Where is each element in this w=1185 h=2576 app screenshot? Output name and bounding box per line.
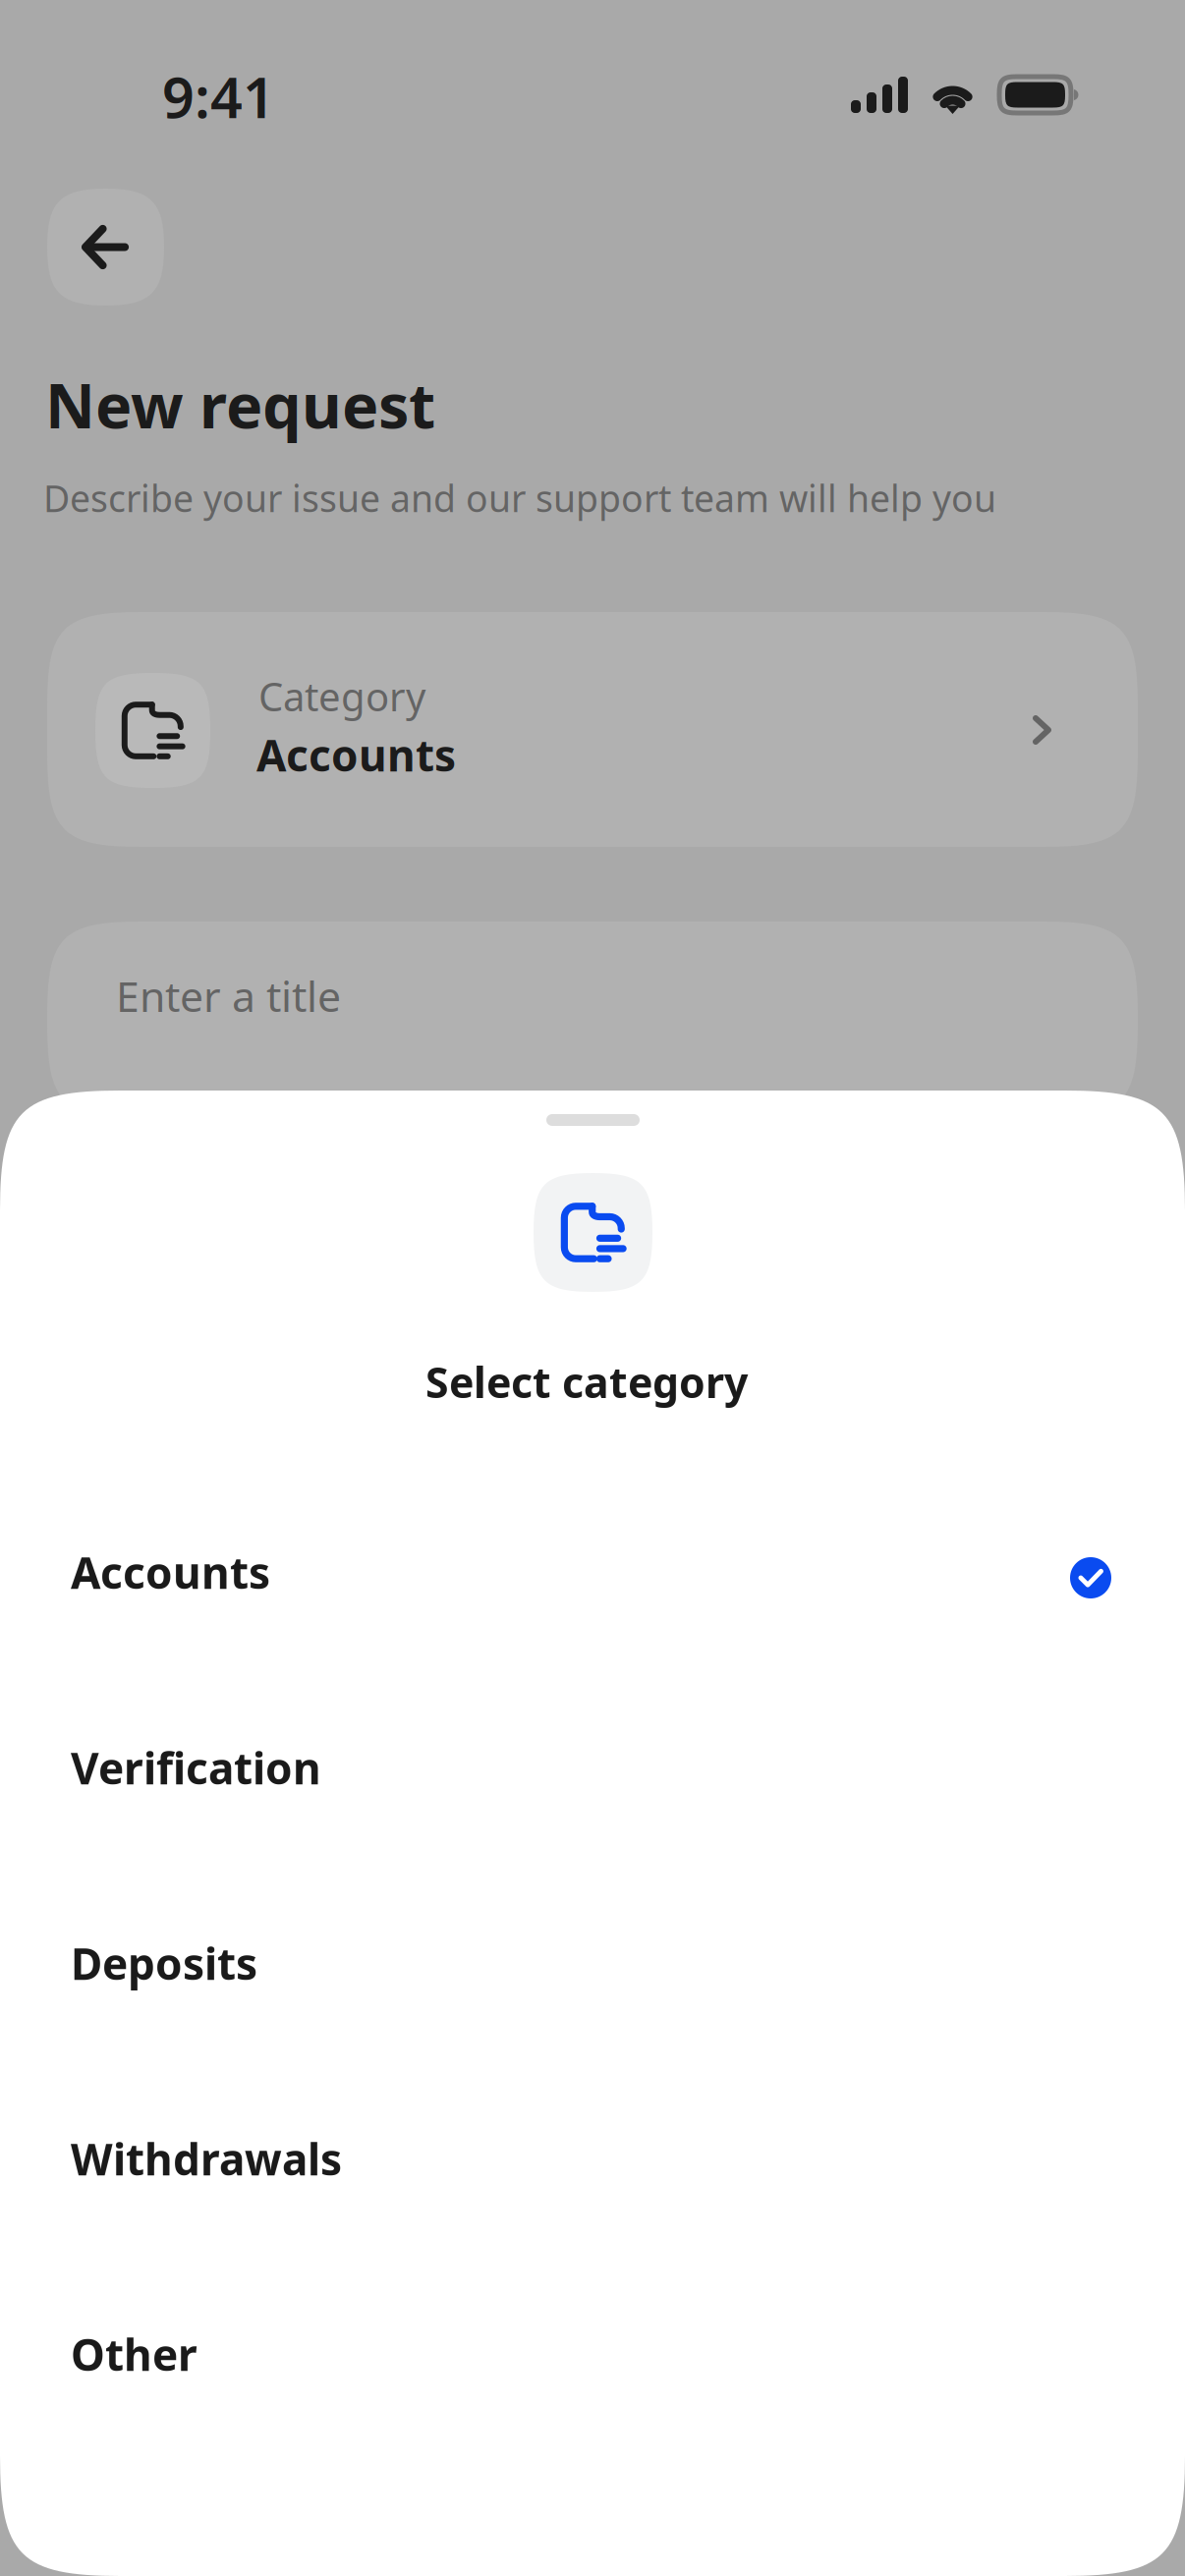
staticText: Select category (425, 1354, 748, 1410)
staticText: Category (258, 670, 425, 722)
staticText: Enter a title (116, 968, 341, 1023)
button[interactable]: Deposits (0, 1868, 1185, 2063)
staticText: Verification (71, 1739, 321, 1796)
button[interactable]: Verification (0, 1672, 1185, 1868)
staticText: 9:41 (162, 59, 275, 134)
button[interactable]: Accounts (0, 1477, 1185, 1672)
button[interactable]: Withdrawals (0, 2063, 1185, 2259)
button[interactable]: Other (0, 2259, 1185, 2454)
staticText: Deposits (71, 1934, 257, 1992)
staticText: Accounts (256, 726, 456, 783)
button[interactable]: Category (47, 612, 1138, 847)
staticText: Describe your issue and our support team… (43, 474, 996, 522)
staticText: Other (71, 2325, 197, 2383)
staticText: New request (45, 364, 435, 445)
staticText: Accounts (71, 1543, 270, 1601)
staticText: Withdrawals (71, 2130, 342, 2187)
button[interactable]: Back (47, 189, 164, 306)
